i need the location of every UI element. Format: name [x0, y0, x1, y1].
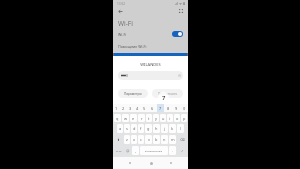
- button[interactable]: Back: [117, 8, 123, 14]
- staticText: ◂ Українська ▸: [145, 149, 163, 152]
- button[interactable]: Wi-Fi: [113, 28, 188, 40]
- button[interactable]: 4: [134, 104, 140, 112]
- staticText: x: [133, 137, 136, 142]
- button[interactable]: Помощник Wi-Fi: [113, 40, 188, 52]
- staticText: b: [155, 137, 158, 142]
- button[interactable]: u: [160, 114, 166, 122]
- button[interactable]: a: [117, 124, 123, 133]
- staticText: 7: [159, 106, 162, 111]
- button[interactable]: 6: [149, 104, 156, 112]
- staticText: 1: [115, 106, 118, 111]
- staticText: Помощник Wi-Fi: [118, 44, 147, 49]
- button[interactable]: Параметры: [118, 89, 148, 98]
- button[interactable]: b: [153, 135, 160, 144]
- button[interactable]: p: [181, 114, 187, 122]
- button[interactable]: 3: [127, 104, 133, 112]
- staticText: Wi-Fi: [118, 32, 127, 37]
- staticText: ✓: [181, 149, 184, 153]
- staticText: f: [140, 126, 142, 131]
- button[interactable]: s: [124, 124, 130, 133]
- button[interactable]: 1: [113, 104, 119, 112]
- staticText: Параметры: [124, 92, 142, 96]
- button[interactable]: t: [146, 114, 152, 122]
- button[interactable]: g: [145, 124, 152, 133]
- staticText: ?123: [116, 149, 122, 152]
- staticText: c: [140, 137, 142, 142]
- button[interactable]: l: [177, 124, 184, 133]
- button[interactable]: d: [131, 124, 137, 133]
- button[interactable]: 7: [157, 104, 164, 112]
- button[interactable]: n: [161, 135, 168, 144]
- staticText: t: [148, 116, 150, 121]
- button[interactable]: .: [169, 146, 176, 155]
- staticText: m: [171, 137, 175, 142]
- button[interactable]: Recents: [167, 159, 175, 167]
- staticText: z: [126, 137, 128, 142]
- button[interactable]: c: [138, 135, 144, 144]
- staticText: j: [164, 126, 166, 131]
- button[interactable]: 5: [141, 104, 148, 112]
- button[interactable]: j: [161, 124, 168, 133]
- button[interactable]: 8: [165, 104, 172, 112]
- button[interactable]: More options: [178, 8, 184, 14]
- button[interactable]: [118, 71, 183, 80]
- button[interactable]: m: [169, 135, 176, 144]
- staticText: 7: [162, 94, 166, 102]
- staticText: q: [116, 116, 119, 121]
- staticText: WILANDES: [140, 62, 161, 67]
- staticText: p: [183, 116, 186, 121]
- button[interactable]: f: [138, 124, 144, 133]
- staticText: Wi-Fi: [118, 19, 133, 28]
- staticText: ,: [135, 148, 137, 153]
- staticText: v: [148, 137, 150, 142]
- staticText: ⬆: [117, 138, 120, 142]
- staticText: 6: [151, 106, 154, 111]
- staticText: k: [171, 126, 174, 131]
- button[interactable]: i: [167, 114, 173, 122]
- button[interactable]: Backspace: [177, 135, 187, 144]
- staticText: a: [119, 126, 122, 131]
- staticText: e: [132, 116, 135, 121]
- staticText: 0: [183, 106, 186, 111]
- button[interactable]: Back: [126, 159, 134, 167]
- staticText: r: [141, 116, 143, 121]
- button[interactable]: r: [138, 114, 145, 122]
- staticText: o: [176, 116, 179, 121]
- button[interactable]: q: [114, 114, 121, 122]
- staticText: ☺: [126, 149, 130, 153]
- button[interactable]: e: [130, 114, 137, 122]
- staticText: 13:52: [117, 2, 126, 6]
- staticText: 9: [175, 106, 178, 111]
- button[interactable]: o: [174, 114, 180, 122]
- staticText: ⌫: [180, 138, 185, 142]
- button[interactable]: ,: [132, 146, 139, 155]
- button[interactable]: Emoji: [124, 146, 131, 155]
- button[interactable]: ◂ Українська ▸: [140, 146, 168, 155]
- button[interactable]: Shift: [114, 135, 123, 144]
- button[interactable]: v: [145, 135, 152, 144]
- staticText: 3: [129, 106, 132, 111]
- button[interactable]: k: [169, 124, 176, 133]
- staticText: 4: [136, 106, 139, 111]
- staticText: 8: [167, 106, 170, 111]
- button[interactable]: Подключить: [152, 89, 183, 98]
- staticText: l: [180, 126, 182, 131]
- button[interactable]: Enter: [177, 146, 187, 155]
- button[interactable]: x: [131, 135, 137, 144]
- staticText: u: [162, 116, 165, 121]
- staticText: w: [124, 116, 128, 121]
- button[interactable]: 0: [181, 104, 188, 112]
- staticText: g: [147, 126, 150, 131]
- staticText: y: [155, 116, 157, 121]
- button[interactable]: Home: [147, 159, 155, 167]
- button[interactable]: y: [153, 114, 159, 122]
- button[interactable]: 9: [173, 104, 180, 112]
- button[interactable]: w: [122, 114, 129, 122]
- staticText: Подключить: [158, 92, 178, 96]
- button[interactable]: ?123: [114, 146, 123, 155]
- button[interactable]: z: [124, 135, 130, 144]
- button[interactable]: 2: [120, 104, 126, 112]
- staticText: s: [126, 126, 128, 131]
- button[interactable]: h: [153, 124, 160, 133]
- staticText: i: [169, 116, 171, 121]
